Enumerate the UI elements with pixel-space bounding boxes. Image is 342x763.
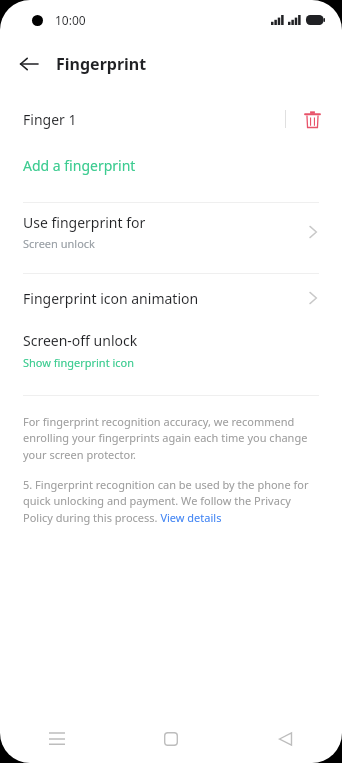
staticText: For fingerprint recognition accuracy, we… — [23, 414, 318, 463]
staticText: 10:00 — [55, 12, 86, 28]
button[interactable]: Screen-off unlock — [0, 322, 342, 377]
button[interactable]: Fingerprint icon animation — [0, 274, 342, 322]
button[interactable]: Add a fingerprint — [0, 149, 342, 181]
button[interactable]: Recents — [0, 715, 114, 763]
staticText: Finger 1 — [23, 110, 77, 129]
staticText: Screen unlock — [23, 236, 95, 251]
staticText: Add a fingerprint — [23, 156, 136, 175]
staticText: Fingerprint — [56, 53, 147, 75]
button[interactable]: Back — [15, 50, 43, 78]
staticText: Screen-off unlock — [23, 331, 138, 350]
button[interactable]: Finger 1 — [0, 97, 342, 141]
button[interactable]: Home — [114, 715, 228, 763]
button[interactable]: Use fingerprint for — [0, 203, 342, 261]
button[interactable]: Delete fingerprint — [300, 107, 324, 131]
staticText: 5. Fingerprint recognition can be used b… — [23, 477, 318, 526]
staticText: Show fingerprint icon — [23, 355, 135, 370]
staticText: Use fingerprint for — [23, 213, 146, 232]
staticText: Fingerprint icon animation — [23, 289, 304, 308]
button[interactable]: Back — [228, 715, 342, 763]
